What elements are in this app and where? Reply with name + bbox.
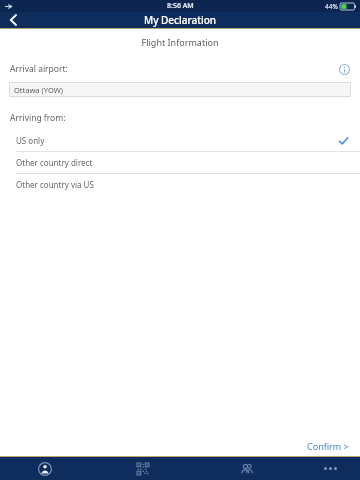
button[interactable]: Scan QR code <box>90 457 195 480</box>
staticText: 44% <box>325 2 338 11</box>
button[interactable]: Back <box>0 12 26 28</box>
staticText: Ottawa (YOW) <box>14 85 63 95</box>
staticText: Flight Information <box>0 36 360 48</box>
button[interactable]: Ottawa (YOW) <box>9 82 351 97</box>
staticText: US only <box>16 135 45 146</box>
staticText: My Declaration <box>144 13 217 27</box>
staticText: Arrival airport: <box>10 63 68 75</box>
staticText: Other country direct <box>16 157 93 168</box>
button[interactable]: Other country via US <box>0 174 360 195</box>
button[interactable]: Profile <box>0 457 90 480</box>
button[interactable]: Confirm > <box>304 437 352 455</box>
button[interactable]: US only <box>0 130 360 151</box>
staticText: 8:56 AM <box>167 1 194 11</box>
staticText: Arriving from: <box>10 112 66 124</box>
staticText: Confirm > <box>307 440 349 452</box>
button[interactable]: More options <box>300 457 360 480</box>
staticText: Other country via US <box>16 179 94 190</box>
button[interactable]: Travellers <box>195 457 300 480</box>
button[interactable]: Other country direct <box>0 152 360 173</box>
button[interactable]: Information <box>336 61 352 77</box>
